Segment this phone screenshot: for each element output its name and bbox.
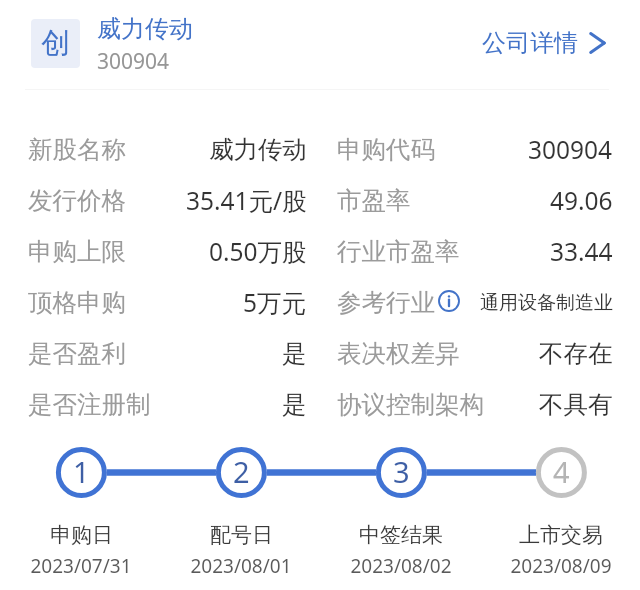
staticText: 协议控制架构: [337, 389, 484, 420]
staticText: 0.50万股: [209, 235, 307, 268]
staticText: 创: [41, 25, 70, 62]
staticText: 300904: [528, 133, 613, 166]
staticText: 300904: [97, 47, 170, 76]
button[interactable]: 3: [321, 446, 481, 579]
staticText: 2: [233, 452, 250, 491]
staticText: 新股名称: [28, 134, 126, 165]
staticText: 是否盈利: [28, 338, 126, 369]
button[interactable]: 参考行业: [337, 277, 613, 328]
staticText: 通用设备制造业: [480, 291, 613, 315]
staticText: 配号日: [210, 522, 273, 548]
staticText: 2023/08/09: [510, 553, 612, 579]
button[interactable]: 顶格申购: [28, 277, 307, 328]
button[interactable]: 公司详情: [482, 28, 606, 58]
button[interactable]: 行业市盈率: [337, 226, 613, 277]
button[interactable]: 是否注册制: [28, 379, 307, 430]
staticText: 上市交易: [519, 522, 603, 548]
staticText: 35.41元/股: [186, 184, 307, 217]
button[interactable]: 申购上限: [28, 226, 307, 277]
staticText: 是: [282, 338, 307, 369]
staticText: 3: [393, 452, 410, 491]
staticText: 是否注册制: [28, 389, 151, 420]
staticText: 发行价格: [28, 185, 126, 216]
staticText: 4: [553, 452, 570, 491]
staticText: 公司详情: [482, 28, 578, 58]
staticText: 不存在: [539, 338, 613, 369]
staticText: 行业市盈率: [337, 236, 460, 267]
button[interactable]: 2: [161, 446, 321, 579]
button[interactable]: 发行价格: [28, 175, 307, 226]
other: Industry info: [438, 290, 460, 312]
button[interactable]: 创: [0, 0, 640, 86]
staticText: 是: [282, 389, 307, 420]
staticText: 申购日: [50, 522, 113, 548]
staticText: 申购上限: [28, 236, 126, 267]
staticText: 威力传动: [209, 134, 307, 165]
staticText: 不具有: [539, 389, 613, 420]
staticText: 中签结果: [359, 522, 443, 548]
button[interactable]: 是否盈利: [28, 328, 307, 379]
button[interactable]: 4: [481, 446, 640, 579]
staticText: 参考行业: [337, 287, 435, 318]
button[interactable]: 市盈率: [337, 175, 613, 226]
button[interactable]: 1: [1, 446, 161, 579]
staticText: 49.06: [550, 184, 613, 217]
staticText: 2023/08/02: [350, 553, 452, 579]
staticText: 5万元: [243, 286, 307, 319]
button[interactable]: 新股名称: [28, 124, 307, 175]
staticText: 顶格申购: [28, 287, 126, 318]
button[interactable]: 表决权差异: [337, 328, 613, 379]
staticText: 1: [73, 452, 90, 491]
staticText: 市盈率: [337, 185, 411, 216]
staticText: 2023/08/01: [190, 553, 292, 579]
button[interactable]: 申购代码: [337, 124, 613, 175]
staticText: 申购代码: [337, 134, 435, 165]
button[interactable]: 协议控制架构: [337, 379, 613, 430]
staticText: 威力传动: [97, 14, 193, 44]
staticText: 表决权差异: [337, 338, 460, 369]
staticText: 2023/07/31: [30, 553, 132, 579]
staticText: 33.44: [550, 235, 613, 268]
